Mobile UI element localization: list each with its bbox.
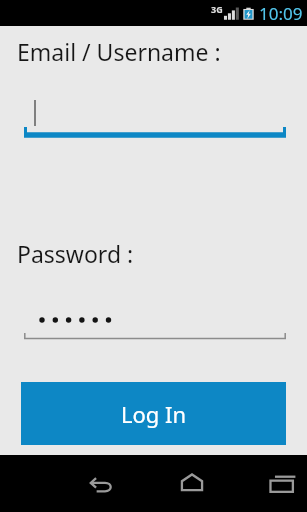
button[interactable]: Home <box>164 455 220 512</box>
staticText: 10:09 <box>259 2 303 25</box>
button[interactable]: Log In <box>21 382 286 445</box>
button[interactable]: Back <box>72 455 128 512</box>
staticText: Password : <box>17 238 134 269</box>
button[interactable]: Email or username input <box>24 98 286 138</box>
staticText: Email / Username : <box>17 36 221 67</box>
button[interactable]: Password input <box>24 302 286 340</box>
staticText: 3G <box>211 3 223 15</box>
staticText: Log In <box>121 399 187 429</box>
button[interactable]: Recent apps <box>266 455 307 512</box>
